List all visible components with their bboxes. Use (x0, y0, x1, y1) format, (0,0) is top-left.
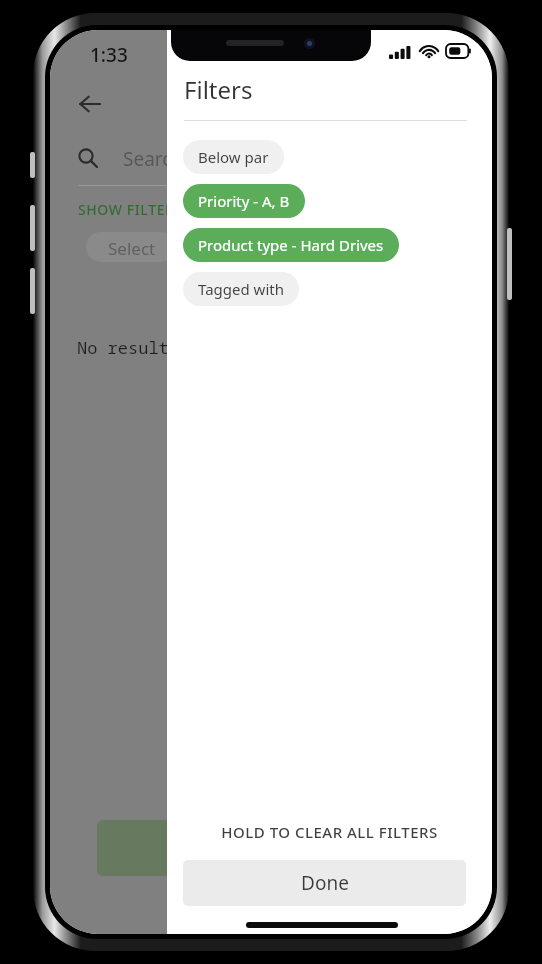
staticText: Tagged with (198, 279, 284, 299)
staticText: Below par (198, 147, 269, 167)
staticText: No results (77, 336, 179, 359)
button[interactable]: Back (68, 82, 112, 126)
staticText: SHOW FILTER (78, 200, 175, 219)
staticText: Product type - Hard Drives (198, 235, 384, 255)
staticText: 1:33 (90, 42, 128, 68)
button[interactable]: Product type - Hard Drives (183, 228, 399, 262)
button[interactable]: Below par (183, 140, 284, 174)
staticText: Done (301, 870, 349, 896)
staticText: HOLD TO CLEAR ALL FILTERS (221, 822, 438, 842)
staticText: Priority - A, B (198, 191, 290, 211)
button[interactable]: Done (183, 860, 466, 906)
staticText: Select (108, 237, 156, 260)
staticText: Search (123, 146, 184, 172)
staticText: Filters (184, 73, 253, 106)
button[interactable]: HOLD TO CLEAR ALL FILTERS (167, 812, 492, 852)
button[interactable]: Tagged with (183, 272, 299, 306)
button[interactable]: Priority - A, B (183, 184, 305, 218)
